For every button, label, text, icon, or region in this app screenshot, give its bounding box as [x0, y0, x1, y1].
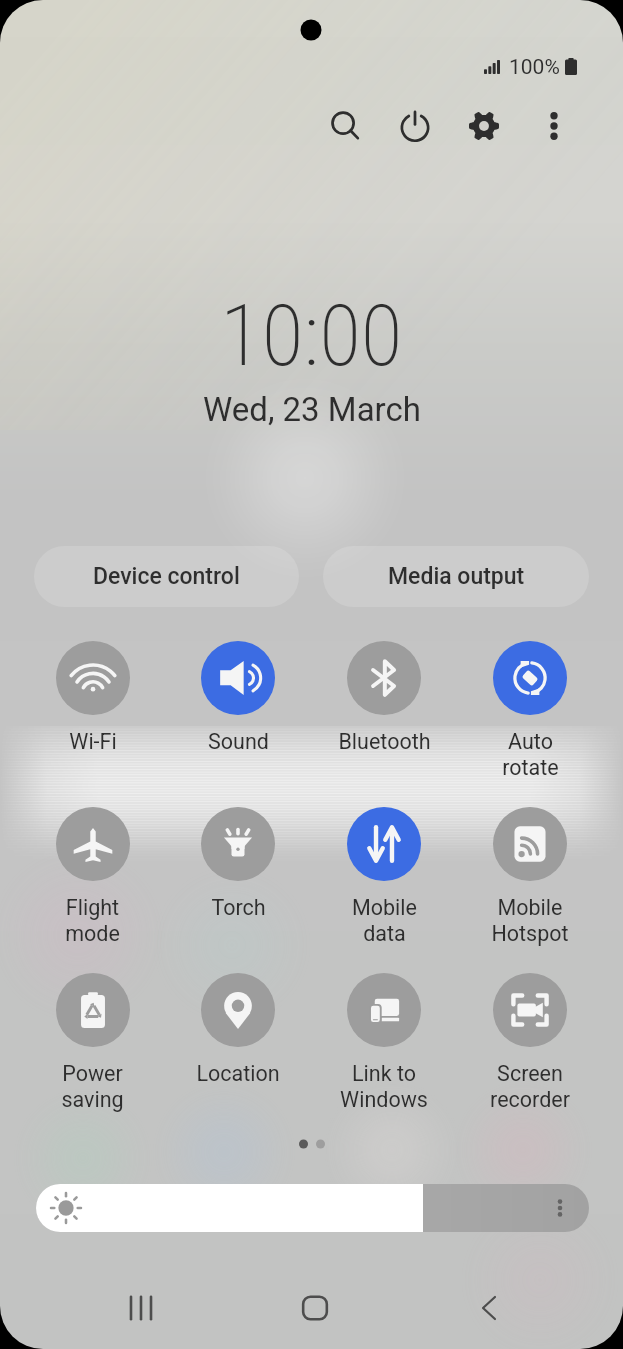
button[interactable]: Flight mode: [20, 807, 165, 946]
button[interactable]: Back: [459, 1278, 519, 1338]
button[interactable]: More options: [532, 104, 576, 148]
button[interactable]: Sound: [165, 641, 311, 754]
button[interactable]: Bluetooth: [311, 641, 457, 754]
button[interactable]: Screen recorder: [457, 973, 603, 1112]
button[interactable]: Wi-Fi: [20, 641, 165, 754]
button[interactable]: Media output: [323, 546, 589, 607]
button[interactable]: Brightness options: [543, 1191, 577, 1225]
staticText: Flight mode: [65, 895, 120, 946]
button[interactable]: Recents: [111, 1278, 171, 1338]
button[interactable]: Location: [165, 973, 311, 1086]
button[interactable]: Auto rotate: [457, 641, 603, 780]
button[interactable]: Device control: [34, 546, 299, 607]
staticText: Mobile Hotspot: [491, 895, 569, 946]
button[interactable]: Home: [285, 1278, 345, 1338]
staticText: 100%: [509, 55, 560, 80]
staticText: Bluetooth: [338, 729, 431, 754]
staticText: Mobile data: [352, 895, 417, 946]
staticText: Device control: [93, 563, 240, 590]
staticText: Media output: [388, 563, 525, 590]
staticText: Link to Windows: [340, 1061, 428, 1112]
staticText: Power saving: [61, 1061, 124, 1112]
button[interactable]: Power saving: [20, 973, 165, 1112]
staticText: Location: [196, 1061, 280, 1086]
staticText: Screen recorder: [490, 1061, 570, 1112]
staticText: Auto rotate: [502, 729, 559, 780]
button[interactable]: Power: [393, 104, 437, 148]
button[interactable]: Settings: [462, 104, 506, 148]
button[interactable]: Search: [323, 104, 367, 148]
staticText: Wed, 23 March: [203, 390, 421, 429]
button[interactable]: Brightness options: [36, 1184, 589, 1232]
staticText: Torch: [211, 895, 266, 920]
staticText: Sound: [208, 729, 269, 754]
button[interactable]: Mobile Hotspot: [457, 807, 603, 946]
staticText: 10:00: [220, 285, 403, 386]
button[interactable]: Torch: [165, 807, 311, 920]
staticText: Wi-Fi: [69, 729, 117, 754]
button[interactable]: Mobile data: [311, 807, 457, 946]
button[interactable]: Link to Windows: [311, 973, 457, 1112]
